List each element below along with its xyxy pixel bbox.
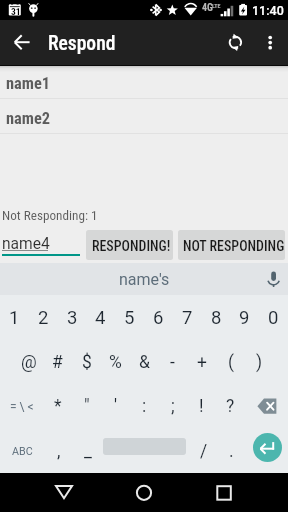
staticText: - — [170, 352, 175, 373]
staticText: 4G — [202, 2, 213, 14]
staticText: 3 — [67, 307, 78, 329]
button[interactable]: name1 — [0, 64, 288, 99]
button[interactable]: NOT RESPONDING — [178, 230, 285, 260]
button[interactable]: Voice input — [258, 263, 288, 295]
staticText: NOT RESPONDING — [183, 238, 285, 254]
button[interactable]: @ — [14, 340, 43, 385]
button[interactable]: # — [43, 340, 72, 385]
staticText: ) — [256, 352, 263, 373]
button[interactable]: 8 — [202, 295, 231, 340]
staticText: 1 — [9, 307, 20, 329]
staticText: ( — [228, 352, 234, 373]
staticText: : — [142, 396, 147, 417]
staticText: = \ < — [10, 400, 34, 414]
staticText: + — [197, 352, 207, 373]
staticText: 9 — [239, 307, 250, 329]
staticText: RESPONDING! — [92, 238, 171, 254]
staticText: % — [109, 352, 122, 373]
staticText: ; — [171, 396, 175, 417]
staticText: ' — [114, 396, 118, 417]
button[interactable]: " — [72, 384, 101, 429]
staticText: name2 — [6, 109, 51, 128]
staticText: 5 — [124, 307, 135, 329]
button[interactable]: Back — [24, 473, 104, 512]
button[interactable]: 9 — [230, 295, 259, 340]
button[interactable]: $ — [72, 340, 101, 385]
staticText: name4 — [2, 235, 50, 253]
staticText: LTE — [212, 2, 221, 9]
staticText: name1 — [6, 74, 51, 93]
staticText: 4 — [95, 307, 106, 329]
button[interactable]: Navigate up — [0, 20, 44, 64]
button[interactable]: ; — [158, 384, 187, 429]
button[interactable]: Refresh — [213, 20, 258, 64]
button[interactable]: : — [130, 384, 159, 429]
button[interactable]: Recent apps — [184, 473, 264, 512]
button[interactable]: ) — [245, 340, 274, 385]
button[interactable]: & — [130, 340, 159, 385]
button[interactable]: name's — [0, 263, 288, 295]
staticText: * — [54, 396, 62, 417]
button[interactable]: 1 — [0, 295, 29, 340]
staticText: 6 — [153, 307, 164, 329]
staticText: _ — [84, 441, 92, 462]
button[interactable]: + — [187, 340, 216, 385]
staticText: 2 — [38, 307, 49, 329]
button[interactable]: 0 — [259, 295, 288, 340]
button[interactable]: ( — [216, 340, 245, 385]
button[interactable]: _ — [73, 429, 102, 474]
button[interactable]: ? — [216, 384, 245, 429]
button[interactable]: 6 — [144, 295, 173, 340]
staticText: Respond — [48, 32, 116, 55]
button[interactable]: = \ < — [0, 384, 43, 429]
button[interactable]: name2 — [0, 99, 288, 134]
button[interactable]: Enter — [246, 426, 288, 471]
button[interactable]: - — [158, 340, 187, 385]
button[interactable]: ABC — [8, 429, 37, 474]
button[interactable]: 5 — [115, 295, 144, 340]
staticText: . — [229, 441, 234, 462]
staticText: " — [84, 396, 90, 417]
button[interactable]: RESPONDING! — [86, 230, 173, 260]
staticText: 7 — [182, 307, 193, 329]
staticText: 0 — [268, 307, 279, 329]
button[interactable]: Home — [104, 473, 184, 512]
staticText: # — [52, 352, 63, 373]
staticText: ! — [199, 396, 204, 417]
button[interactable]: , — [44, 429, 73, 474]
staticText: 31 — [11, 6, 21, 17]
button[interactable]: * — [43, 384, 72, 429]
button[interactable]: 2 — [29, 295, 58, 340]
button[interactable]: / — [189, 429, 218, 474]
staticText: , — [57, 441, 61, 462]
button[interactable]: . — [217, 429, 246, 474]
staticText: @ — [21, 352, 37, 373]
staticText: 11:40 — [252, 3, 284, 18]
staticText: name's — [119, 270, 170, 289]
staticText: & — [139, 352, 150, 373]
button[interactable]: Delete — [245, 384, 288, 429]
button[interactable]: % — [101, 340, 130, 385]
button[interactable]: 7 — [173, 295, 202, 340]
button[interactable]: 4 — [86, 295, 115, 340]
staticText: ABC — [12, 445, 33, 458]
staticText: 8 — [211, 307, 222, 329]
button[interactable]: ' — [101, 384, 130, 429]
staticText: / — [200, 441, 208, 462]
button[interactable]: 3 — [58, 295, 87, 340]
button[interactable]: More options — [248, 20, 288, 64]
staticText: $ — [82, 352, 92, 373]
staticText: ? — [226, 396, 235, 417]
button[interactable]: ! — [187, 384, 216, 429]
staticText: Not Responding: 1 — [2, 208, 98, 223]
